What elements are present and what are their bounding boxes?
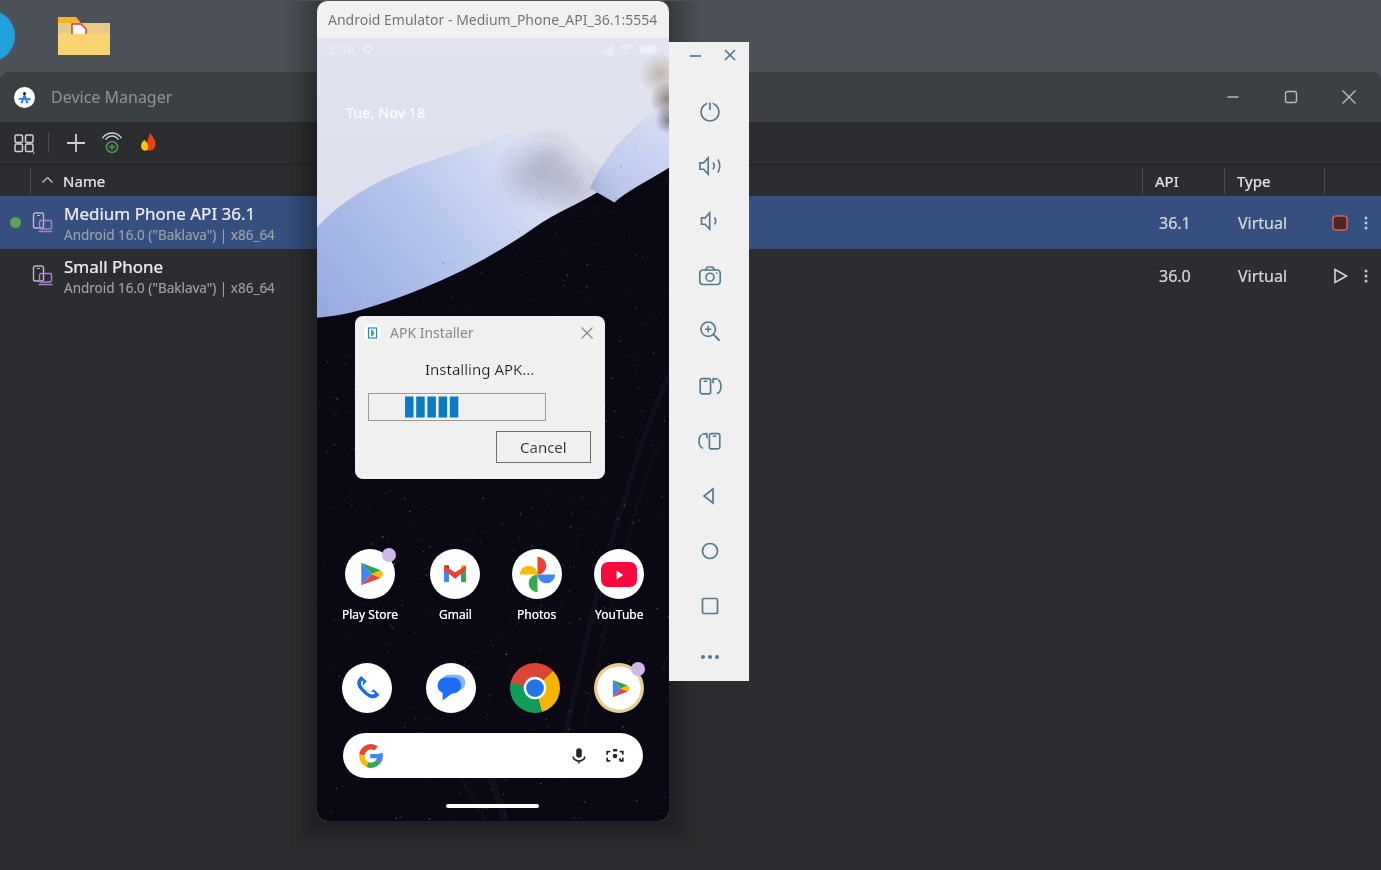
staticText: Type [1237, 171, 1271, 191]
staticText: Cancel [520, 437, 567, 457]
button[interactable]: Play Store [594, 663, 644, 713]
button[interactable]: More actions [1356, 266, 1376, 286]
staticText: Virtual [1238, 212, 1288, 234]
button[interactable]: Close [577, 323, 597, 343]
button[interactable]: Zoom [682, 303, 737, 358]
staticText: 36.1 [1159, 212, 1191, 234]
button[interactable]: Firebase [135, 130, 161, 156]
button[interactable]: Stop [1329, 212, 1351, 234]
button[interactable]: Rotate right [682, 413, 737, 468]
staticText: Medium Phone API 36.1 [64, 202, 256, 225]
staticText: Installing APK... [425, 359, 535, 379]
button[interactable]: Minimize panel [684, 43, 710, 69]
button[interactable]: Play Store [342, 549, 398, 622]
button[interactable]: More actions [1356, 213, 1376, 233]
button[interactable]: Device templates [12, 130, 38, 156]
staticText: APK Installer [390, 323, 474, 342]
staticText: API [1155, 171, 1179, 191]
button[interactable]: Pair device over WiFi [99, 130, 125, 156]
button[interactable]: Run [1329, 265, 1351, 287]
button[interactable]: Voice search [343, 733, 643, 778]
staticText: Device Manager [51, 86, 173, 108]
button[interactable]: Gmail [430, 549, 480, 622]
staticText: YouTube [595, 606, 644, 622]
button[interactable]: Add device [63, 130, 89, 156]
staticText: Small Phone [64, 255, 164, 278]
button[interactable]: Back [682, 468, 737, 523]
button[interactable]: Voice search [569, 746, 589, 766]
button[interactable]: Power [682, 83, 737, 138]
button[interactable]: Screenshot [682, 248, 737, 303]
button[interactable]: Volume down [682, 193, 737, 248]
button[interactable]: Medium Phone API 36.1 [0, 196, 1381, 249]
staticText: Tue, Nov 18 [346, 102, 426, 122]
button[interactable]: Maximize [1269, 75, 1313, 119]
button[interactable]: Close panel [718, 43, 744, 69]
staticText: 36.0 [1159, 265, 1191, 287]
staticText: 2:16 [329, 40, 355, 58]
button[interactable]: Minimize [1211, 75, 1255, 119]
button[interactable]: Google Lens [605, 746, 625, 766]
staticText: Android 16.0 ("Baklava") | x86_64 [64, 279, 275, 297]
button[interactable]: Volume up [682, 138, 737, 193]
button[interactable]: Home [682, 523, 737, 578]
button[interactable]: YouTube [594, 549, 644, 622]
button[interactable]: Phone [342, 663, 392, 713]
button[interactable]: Small Phone [0, 249, 1381, 302]
staticText: Virtual [1238, 265, 1288, 287]
staticText: Gmail [439, 606, 472, 622]
staticText: Name [63, 171, 106, 191]
button[interactable]: Overview [682, 578, 737, 633]
staticText: Android 16.0 ("Baklava") | x86_64 [64, 226, 275, 244]
staticText: Play Store [342, 606, 398, 622]
button[interactable]: More [682, 633, 737, 681]
staticText: Android Emulator - Medium_Phone_API_36.1… [328, 10, 658, 29]
button[interactable]: Messages [426, 663, 476, 713]
button[interactable]: Photos [512, 549, 562, 622]
button[interactable]: Cancel [496, 431, 591, 463]
button[interactable]: Chrome [510, 663, 560, 713]
button[interactable]: Close [1327, 75, 1371, 119]
button[interactable]: Rotate left [682, 358, 737, 413]
staticText: Photos [517, 606, 557, 622]
